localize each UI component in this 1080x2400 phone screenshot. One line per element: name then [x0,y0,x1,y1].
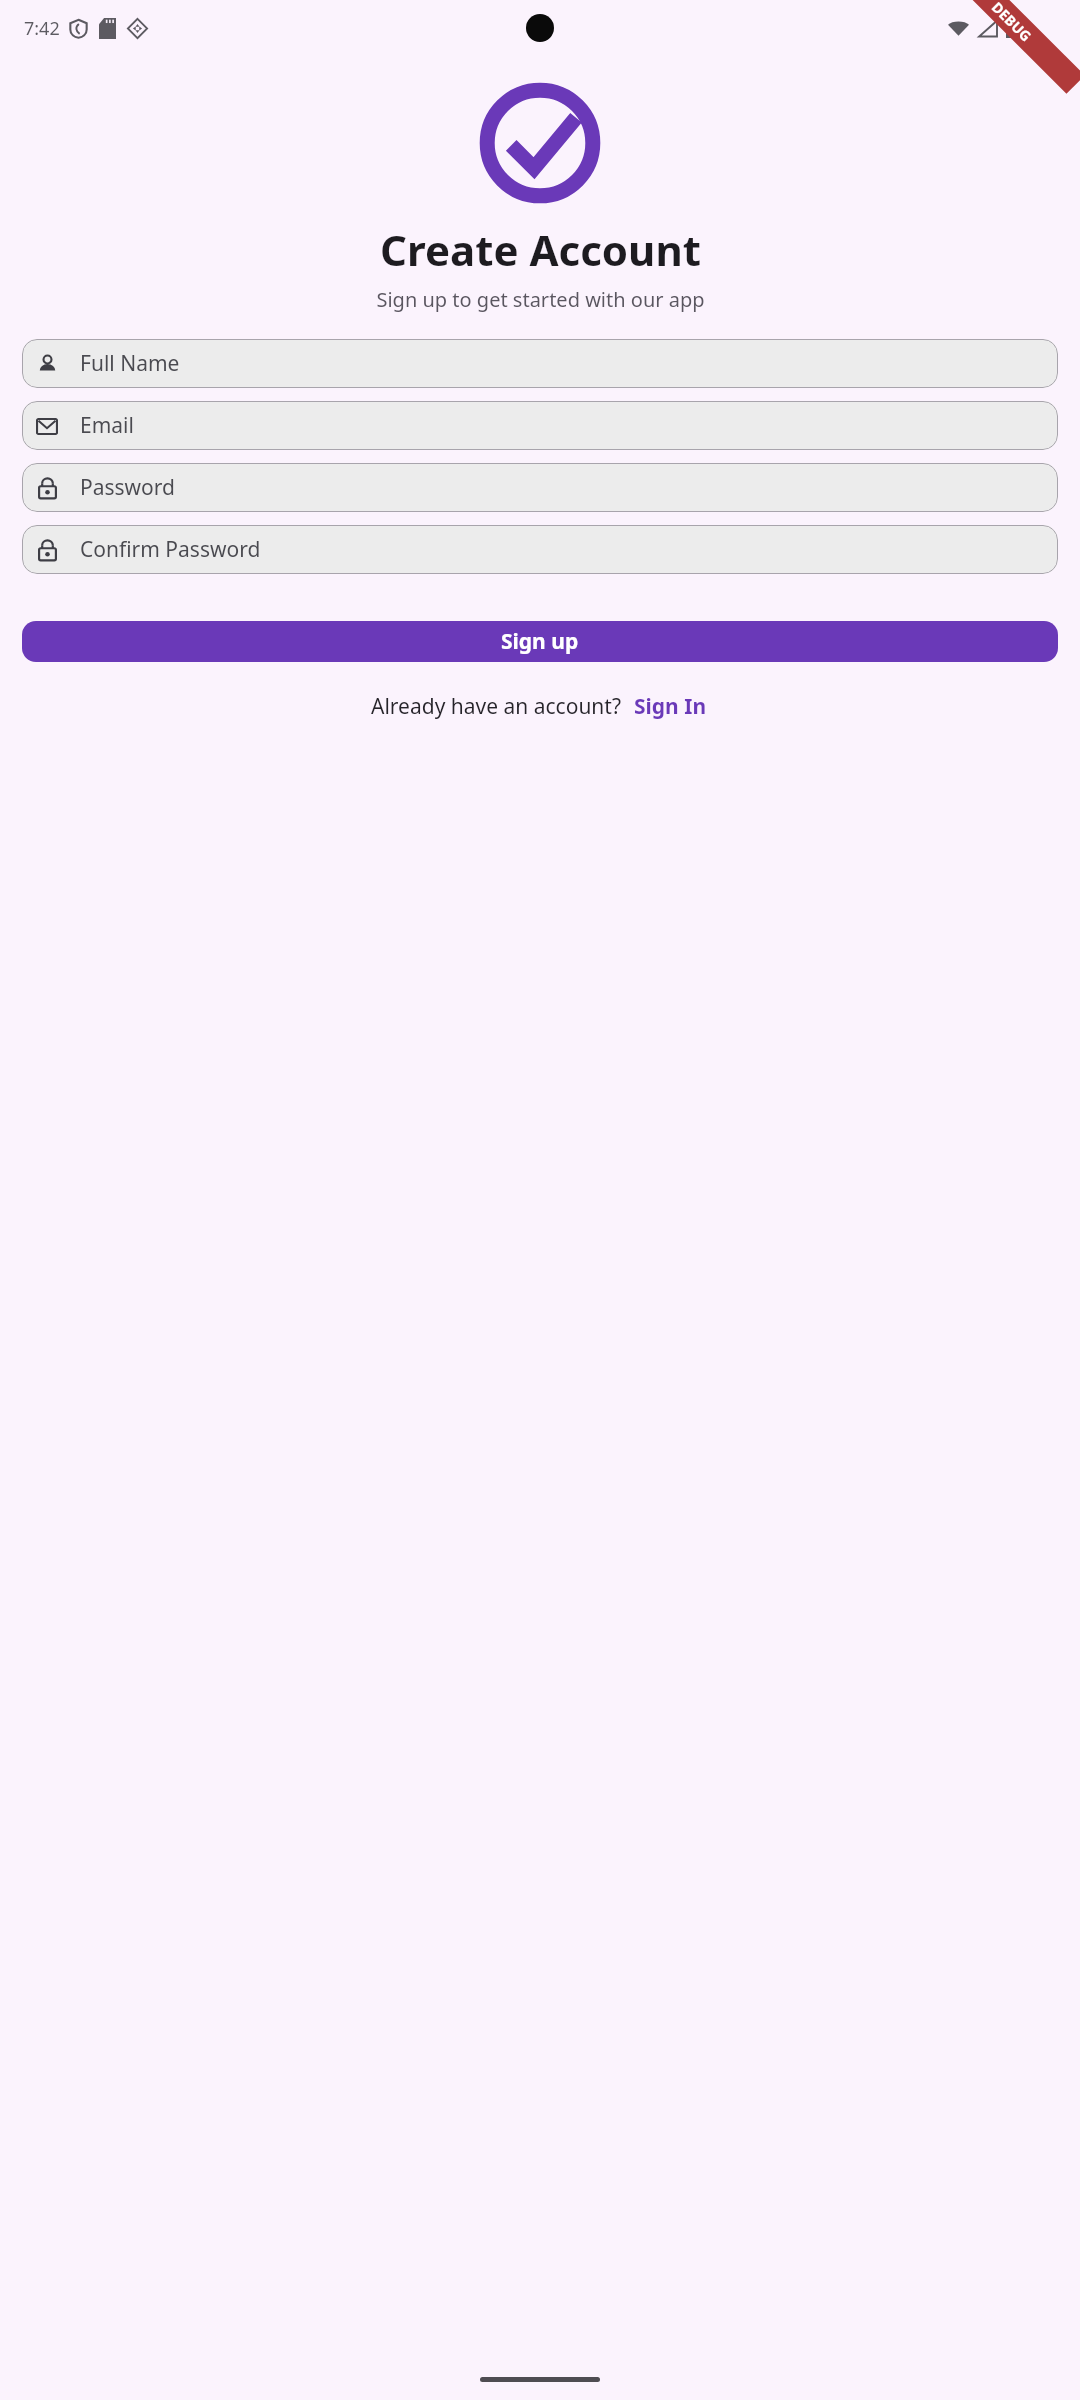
staticText: DEBUG [988,0,1036,46]
button[interactable]: Sign up [22,621,1058,662]
staticText: 7:42 [24,16,60,41]
staticText: Full Name [80,349,180,378]
staticText: Sign In [634,692,707,721]
staticText: Create Account [380,221,701,278]
button[interactable]: Email [22,401,1058,450]
staticText: Password [80,473,175,502]
button[interactable]: Full Name [22,339,1058,388]
staticText: Sign up to get started with our app [376,286,705,313]
staticText: Sign up [501,627,579,656]
staticText: Confirm Password [80,535,261,564]
staticText: Already have an account? [371,692,622,721]
button[interactable]: Sign In [632,690,709,723]
staticText: Email [80,411,134,440]
button[interactable]: Confirm Password [22,525,1058,574]
button[interactable]: Password [22,463,1058,512]
